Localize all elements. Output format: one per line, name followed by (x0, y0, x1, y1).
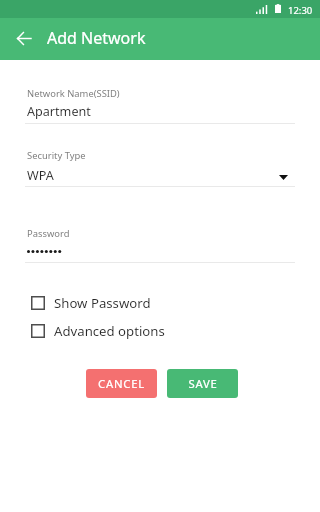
staticText: Show Password (54, 294, 151, 312)
staticText: Security Type (27, 149, 86, 162)
button[interactable]: Show Password (25, 293, 225, 313)
staticText: CANCEL (98, 376, 145, 391)
staticText: Add Network (47, 27, 146, 49)
staticText: Network Name(SSID) (27, 87, 120, 100)
button[interactable]: Back (13, 27, 35, 49)
staticText: 12:30 (288, 4, 313, 17)
button[interactable]: CANCEL (86, 369, 157, 398)
button[interactable] (25, 243, 295, 263)
staticText: WPA (27, 167, 54, 184)
staticText: Apartment (27, 103, 91, 120)
staticText: SAVE (188, 376, 218, 391)
button[interactable]: Advanced options (25, 321, 225, 341)
button[interactable]: WPA (25, 165, 295, 187)
button[interactable]: Apartment (25, 101, 295, 124)
staticText: Advanced options (54, 322, 165, 340)
staticText: Password (27, 227, 70, 240)
button[interactable]: SAVE (167, 369, 238, 398)
